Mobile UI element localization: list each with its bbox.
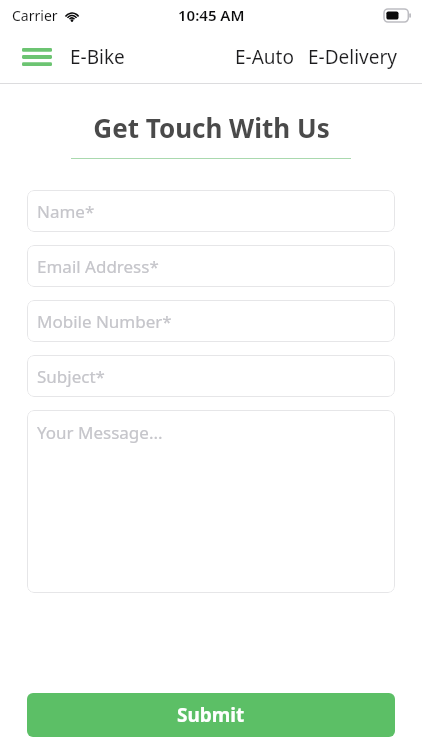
- staticText: 10:45 AM: [178, 5, 245, 25]
- button[interactable]: Mobile Number*: [27, 300, 395, 342]
- button[interactable]: Subject*: [27, 355, 395, 397]
- staticText: E-Auto: [235, 44, 294, 70]
- button[interactable]: Name*: [27, 190, 395, 232]
- button[interactable]: Submit: [27, 693, 395, 737]
- staticText: E-Delivery: [308, 44, 397, 70]
- staticText: Your Message...: [37, 421, 163, 444]
- staticText: Name*: [37, 200, 95, 223]
- staticText: Carrier: [12, 6, 58, 25]
- staticText: Submit: [177, 702, 245, 728]
- button[interactable]: E-Delivery: [308, 44, 397, 70]
- staticText: Subject*: [37, 365, 105, 388]
- staticText: Mobile Number*: [37, 310, 172, 333]
- button[interactable]: Email Address*: [27, 245, 395, 287]
- staticText: Get Touch With Us: [93, 110, 330, 145]
- button[interactable]: Open menu: [22, 46, 52, 68]
- button[interactable]: E-Auto: [235, 44, 294, 70]
- button[interactable]: Your Message...: [27, 410, 395, 593]
- staticText: Email Address*: [37, 255, 159, 278]
- button[interactable]: E-Bike: [70, 44, 125, 70]
- staticText: E-Bike: [70, 44, 125, 70]
